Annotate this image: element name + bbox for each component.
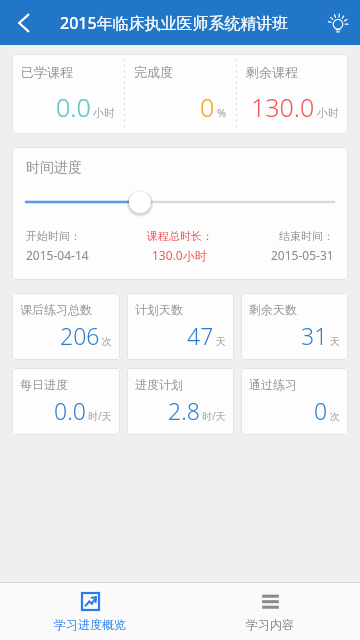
staticText: 课程总时长： xyxy=(147,229,213,243)
staticText: 时/天 xyxy=(88,409,112,423)
staticText: 0.0 xyxy=(56,90,91,124)
button[interactable]: Tips xyxy=(316,0,360,45)
staticText: 小时 xyxy=(317,106,339,120)
button[interactable]: Time progress slider xyxy=(26,189,334,215)
staticText: 2.8 xyxy=(168,395,200,426)
button[interactable]: 学习进度概览 xyxy=(0,583,180,640)
staticText: 已学课程 xyxy=(21,64,73,80)
staticText: 课后练习总数 xyxy=(20,302,92,317)
staticText: 开始时间： xyxy=(26,229,81,243)
staticText: 计划天数 xyxy=(135,302,183,317)
staticText: % xyxy=(217,105,227,120)
staticText: 130.0小时 xyxy=(152,247,207,263)
staticText: 每日进度 xyxy=(20,377,68,392)
staticText: 次 xyxy=(330,410,340,423)
button[interactable]: Back xyxy=(0,0,48,45)
staticText: 47 xyxy=(187,320,214,351)
staticText: 时/天 xyxy=(202,409,226,423)
staticText: 剩余天数 xyxy=(249,302,297,317)
staticText: 31 xyxy=(301,320,328,351)
staticText: 次 xyxy=(102,335,112,348)
staticText: 剩余课程 xyxy=(246,64,298,80)
staticText: 小时 xyxy=(93,106,115,120)
staticText: 结束时间： xyxy=(279,229,334,243)
staticText: 通过练习 xyxy=(249,377,297,392)
staticText: 时间进度 xyxy=(26,159,82,177)
staticText: 2015年临床执业医师系统精讲班 xyxy=(60,12,289,34)
staticText: 0 xyxy=(200,90,215,124)
staticText: 学习进度概览 xyxy=(54,617,126,632)
staticText: 206 xyxy=(60,320,100,351)
staticText: 进度计划 xyxy=(135,377,183,392)
staticText: 130.0 xyxy=(251,90,315,124)
staticText: 学习内容 xyxy=(246,617,294,632)
staticText: 0.0 xyxy=(54,395,86,426)
staticText: 完成度 xyxy=(134,64,173,80)
staticText: 天 xyxy=(330,335,340,348)
staticText: 2015-04-14 xyxy=(26,247,89,263)
button[interactable]: 学习内容 xyxy=(180,583,360,640)
staticText: 2015-05-31 xyxy=(271,247,334,263)
staticText: 0 xyxy=(314,395,328,426)
staticText: 天 xyxy=(216,335,226,348)
